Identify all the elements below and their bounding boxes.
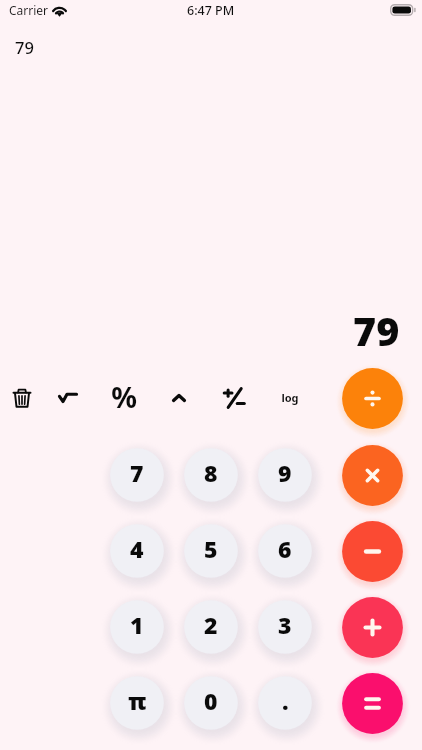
button[interactable]: . [250,668,320,738]
button[interactable]: 1 [102,592,172,662]
button[interactable]: Divide [334,360,411,437]
staticText: π [128,685,147,716]
staticText: % [111,378,137,417]
staticText: 6 [278,533,292,564]
staticText: 9 [278,457,292,488]
staticText: 6:47 PM [187,2,235,19]
staticText: 3 [278,609,292,640]
staticText: . [282,685,289,716]
button[interactable]: 7 [102,440,172,510]
button[interactable]: 8 [176,440,246,510]
button[interactable]: 2 [176,592,246,662]
button[interactable]: Multiply [334,437,411,514]
button[interactable]: 0 [176,668,246,738]
button[interactable]: 9 [250,440,320,510]
button[interactable]: π [102,668,172,738]
button[interactable]: % [102,375,146,419]
staticText: 0 [204,685,218,716]
staticText: log [281,390,299,405]
staticText: Carrier [9,2,49,18]
staticText: 1 [130,609,144,640]
staticText: 4 [130,533,144,564]
button[interactable]: Add [334,589,411,666]
button[interactable]: 3 [250,592,320,662]
staticText: 79 [353,304,400,358]
button[interactable]: log [268,375,312,419]
button[interactable]: Plus minus [212,376,256,420]
button[interactable]: Square root [46,376,90,420]
button[interactable]: Clear [0,376,44,420]
staticText: 2 [204,609,218,640]
button[interactable]: 4 [102,516,172,586]
button[interactable]: 5 [176,516,246,586]
staticText: 8 [204,457,218,488]
staticText: 7 [130,457,144,488]
button[interactable]: Power [157,376,201,420]
staticText: 5 [204,533,218,564]
staticText: 79 [15,36,34,58]
button[interactable]: Subtract [334,513,411,590]
button[interactable]: 6 [250,516,320,586]
button[interactable]: Equals [334,665,411,742]
